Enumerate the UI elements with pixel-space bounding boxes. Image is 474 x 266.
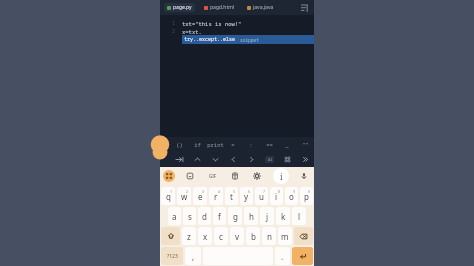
button[interactable]: print	[206, 137, 224, 152]
button[interactable]: v	[230, 227, 244, 245]
button[interactable]: More	[296, 152, 314, 167]
staticText: ""	[302, 141, 309, 148]
button[interactable]: =	[224, 137, 242, 152]
staticText: k	[281, 211, 286, 222]
staticText: GIF	[209, 173, 217, 179]
staticText: ,	[192, 251, 195, 262]
button[interactable]: e	[193, 187, 207, 205]
button[interactable]: Clipboard	[183, 169, 197, 183]
button[interactable]: x	[198, 227, 212, 245]
button[interactable]: Backspace	[294, 227, 313, 245]
staticText: 4	[218, 189, 221, 194]
button[interactable]: Right	[242, 152, 260, 167]
staticText: 1	[172, 20, 176, 27]
button[interactable]: GIF	[206, 167, 220, 184]
button[interactable]: Voice input	[297, 169, 311, 183]
button[interactable]: Info	[273, 168, 289, 184]
button[interactable]: j	[260, 207, 274, 225]
staticText: j	[266, 211, 269, 222]
button[interactable]: AI	[260, 152, 278, 167]
staticText: t	[230, 191, 233, 202]
button[interactable]: u	[255, 187, 268, 205]
staticText: if	[194, 141, 201, 148]
staticText: o	[289, 191, 294, 202]
staticText: txt="this is now!"	[182, 20, 242, 27]
button[interactable]: Command	[278, 152, 296, 167]
button[interactable]: Shift	[161, 227, 180, 245]
button[interactable]: i	[270, 187, 283, 205]
button[interactable]: l	[292, 207, 306, 225]
button[interactable]: d	[198, 207, 211, 225]
staticText: i	[275, 191, 278, 202]
button[interactable]: m	[278, 227, 292, 245]
button[interactable]: q	[161, 187, 175, 205]
button[interactable]: Tab	[170, 152, 188, 167]
staticText: p	[304, 191, 309, 202]
staticText: 3	[202, 189, 205, 194]
button[interactable]: Up	[188, 152, 206, 167]
button[interactable]: z	[182, 227, 196, 245]
button[interactable]: y	[240, 187, 253, 205]
button[interactable]: Sort	[298, 2, 310, 14]
staticText: ()	[176, 141, 183, 148]
button[interactable]: ==	[260, 137, 278, 152]
staticText: n	[267, 231, 272, 242]
button[interactable]: k	[276, 207, 290, 225]
button[interactable]: g	[228, 207, 242, 225]
staticText: l	[298, 211, 301, 222]
staticText: 0	[308, 189, 311, 194]
button[interactable]: r	[209, 187, 223, 205]
staticText: i	[280, 171, 283, 182]
staticText: 7	[263, 189, 266, 194]
staticText: h	[249, 211, 254, 222]
button[interactable]: Settings	[250, 169, 264, 183]
staticText: .	[281, 251, 284, 262]
staticText: 2	[172, 28, 176, 35]
button[interactable]: java.java	[244, 3, 277, 12]
button[interactable]: n	[262, 227, 276, 245]
staticText: m	[281, 231, 289, 242]
button[interactable]: ,	[185, 247, 201, 265]
button[interactable]: if	[188, 137, 206, 152]
button[interactable]: t	[225, 187, 238, 205]
button[interactable]: try..except..else	[182, 35, 314, 44]
button[interactable]: ?123	[161, 247, 183, 265]
button[interactable]: b	[246, 227, 260, 245]
button[interactable]: c	[214, 227, 228, 245]
staticText: 1	[170, 189, 173, 194]
button[interactable]: Enter	[292, 247, 313, 265]
button[interactable]: w	[177, 187, 191, 205]
button[interactable]: :	[242, 137, 260, 152]
button[interactable]: Stickers	[228, 169, 242, 183]
button[interactable]: .	[275, 247, 290, 265]
button[interactable]: ""	[296, 137, 314, 152]
button[interactable]: Keyboard menu	[163, 170, 175, 182]
button[interactable]: ()	[170, 137, 188, 152]
staticText: c	[219, 231, 223, 242]
staticText: _	[285, 141, 289, 148]
staticText: b	[251, 231, 256, 242]
button[interactable]: Down	[206, 152, 224, 167]
button[interactable]: s	[183, 207, 196, 225]
button[interactable]: p	[300, 187, 313, 205]
staticText: java.java	[253, 4, 274, 11]
staticText: page.py	[173, 4, 192, 11]
staticText: s	[188, 211, 192, 222]
button[interactable]: page.py	[164, 3, 195, 12]
staticText: 2	[186, 189, 189, 194]
button[interactable]: o	[285, 187, 298, 205]
button[interactable]: h	[244, 207, 258, 225]
button[interactable]: Assist	[160, 137, 170, 152]
staticText: 6	[248, 189, 251, 194]
button[interactable]: _	[278, 137, 296, 152]
button[interactable]: f	[213, 207, 226, 225]
staticText: ==	[266, 141, 273, 148]
button[interactable]: Left	[224, 152, 242, 167]
staticText: :	[249, 141, 253, 148]
staticText: g	[233, 211, 238, 222]
staticText: x=txt.	[182, 28, 202, 35]
button[interactable]: pagd.html	[201, 3, 238, 12]
staticText: snippet	[240, 37, 259, 43]
button[interactable]: a	[168, 207, 181, 225]
